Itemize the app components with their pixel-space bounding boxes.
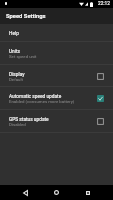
staticText: Set speed unit [9,54,37,59]
staticText: Speed Settings [6,13,46,20]
button[interactable]: Automatic speed update [0,87,113,110]
button[interactable]: Toggle [97,73,104,80]
staticText: GPS status update [9,117,49,123]
button[interactable]: Recents [72,185,103,200]
staticText: Display [9,72,25,78]
button[interactable]: Home [41,185,72,200]
button[interactable]: Toggle [97,95,104,102]
staticText: Default [9,77,23,82]
staticText: Disabled [9,122,26,127]
button[interactable]: Units [0,42,113,65]
staticText: Help [9,31,19,37]
button[interactable]: Back [10,185,41,200]
button[interactable]: Display [0,65,113,87]
staticText: Units [9,49,20,55]
button[interactable]: Help [0,24,113,42]
button[interactable]: GPS status update [0,110,113,133]
staticText: 22:12 [98,1,110,7]
staticText: Enabled (consumes more battery) [9,99,75,104]
button[interactable]: Toggle [97,118,104,125]
staticText: Automatic speed update [9,94,62,100]
